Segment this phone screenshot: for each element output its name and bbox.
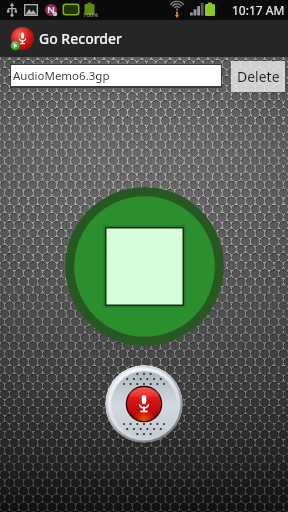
staticText: Delete: [237, 67, 280, 86]
staticText: 100%: [83, 11, 99, 19]
button[interactable]: AudioMemo6.3gp: [11, 65, 221, 86]
button[interactable]: Stop recording: [65, 187, 224, 346]
button[interactable]: Delete: [231, 61, 285, 92]
staticText: AudioMemo6.3gp: [13, 68, 110, 84]
button[interactable]: Record: [105, 365, 183, 443]
staticText: 10:17 AM: [232, 2, 285, 18]
staticText: Go Recorder: [39, 29, 122, 48]
